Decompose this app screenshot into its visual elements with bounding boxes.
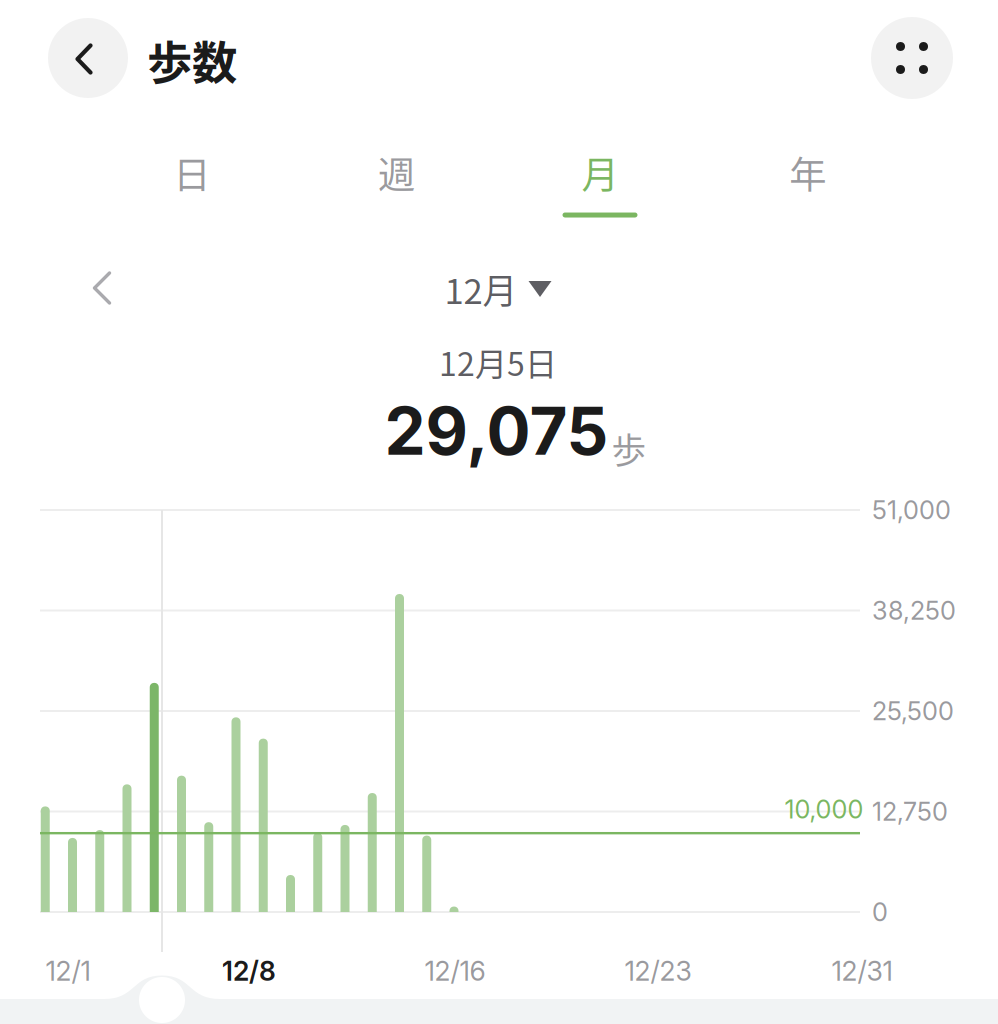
staticText: 12,750 (872, 796, 948, 827)
staticText: 12/8 (222, 955, 276, 987)
staticText: 25,500 (872, 696, 954, 726)
button[interactable]: 週 (294, 140, 498, 228)
staticText: 12月 (444, 264, 517, 314)
staticText: 12月5日 (439, 339, 557, 385)
staticText: 歩数 (147, 27, 237, 93)
staticText: 歩 (611, 423, 646, 473)
staticText: 51,000 (872, 495, 951, 525)
button[interactable]: Scrub chart (139, 977, 185, 1023)
button[interactable]: 12月 (434, 254, 561, 324)
button[interactable]: 年 (706, 140, 910, 228)
button[interactable]: 月 (498, 140, 702, 228)
button[interactable]: More options (871, 17, 953, 99)
staticText: 12/16 (424, 955, 485, 987)
staticText: 日 (173, 145, 210, 200)
button[interactable]: Back (48, 18, 128, 98)
button[interactable]: 日 (90, 140, 294, 228)
staticText: 38,250 (872, 595, 956, 626)
staticText: 10,000 (784, 794, 863, 825)
staticText: 29,075 (384, 391, 608, 470)
button[interactable]: Previous month (67, 253, 137, 323)
staticText: 週 (378, 145, 415, 200)
staticText: 12/1 (45, 955, 90, 987)
staticText: 12/23 (624, 955, 691, 987)
staticText: 12/31 (831, 955, 892, 987)
staticText: 年 (789, 145, 826, 200)
staticText: 0 (872, 897, 888, 927)
staticText: 月 (581, 145, 618, 200)
